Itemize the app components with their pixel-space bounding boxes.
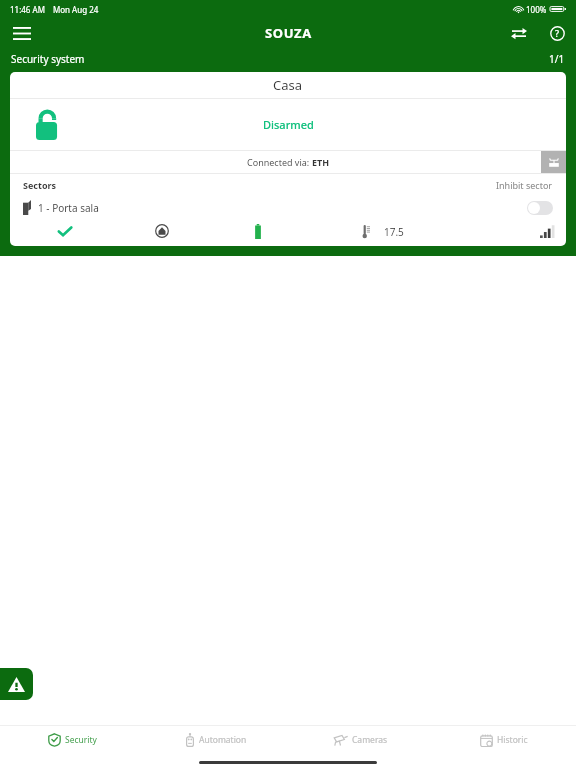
button[interactable]: Historic <box>432 726 576 754</box>
staticText: Inhibit sector <box>496 179 553 191</box>
staticText: Disarmed <box>263 117 314 132</box>
button[interactable]: Automation <box>144 726 288 754</box>
button[interactable]: Inhibit sector toggle <box>527 201 553 215</box>
staticText: ? <box>555 27 560 39</box>
button[interactable]: Disarmed <box>10 99 566 150</box>
staticText: 100% <box>526 4 547 15</box>
staticText: Mon Aug 24 <box>53 4 99 15</box>
staticText: Connected via: <box>247 156 312 168</box>
staticText: 1/1 <box>549 52 565 66</box>
button[interactable]: Open navigation menu <box>0 18 44 48</box>
staticText: SOUZA <box>265 24 312 42</box>
button[interactable]: Cameras <box>288 726 432 754</box>
staticText: Security system <box>11 52 85 66</box>
staticText: Casa <box>273 76 303 94</box>
button[interactable]: Help <box>538 18 576 48</box>
staticText: 1 - Porta sala <box>38 201 99 215</box>
button[interactable]: Alerts <box>0 668 33 700</box>
button[interactable]: 1 - Porta sala <box>23 196 553 219</box>
staticText: Automation <box>199 734 247 746</box>
staticText: Historic <box>497 734 528 746</box>
staticText: Security <box>65 734 97 746</box>
button[interactable]: Security <box>0 726 144 754</box>
staticText: Sectors <box>23 179 57 191</box>
staticText: 11:46 AM <box>10 4 45 15</box>
button[interactable]: Connection settings <box>541 151 566 173</box>
staticText: ETH <box>312 156 330 168</box>
staticText: 17.5 <box>384 225 404 239</box>
button[interactable]: Switch partition <box>500 18 538 48</box>
staticText: Cameras <box>352 734 388 746</box>
